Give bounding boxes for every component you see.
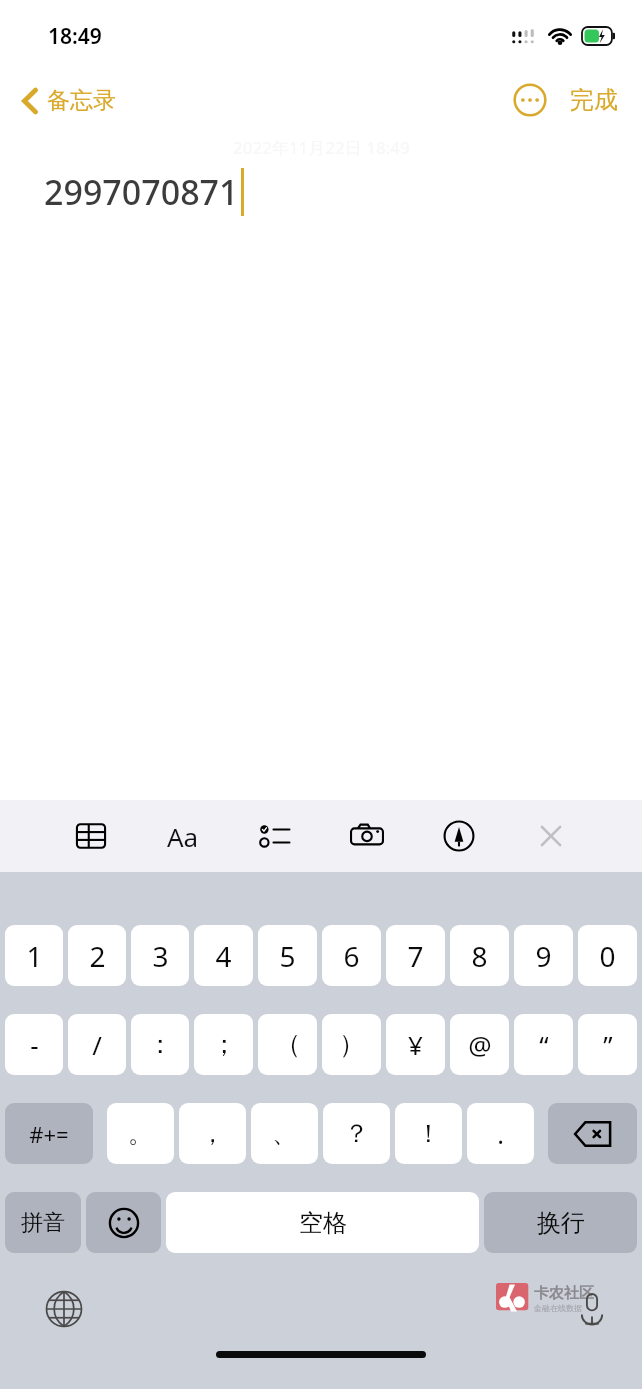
staticText: ¥ xyxy=(408,1027,423,1062)
staticText: - xyxy=(30,1027,39,1062)
button[interactable]: #+= xyxy=(5,1103,93,1164)
staticText: 。 xyxy=(128,1118,153,1149)
staticText: 拼音 xyxy=(21,1209,65,1237)
staticText: 7 xyxy=(407,937,424,975)
button[interactable]: 0 xyxy=(578,925,637,986)
button[interactable]: ” xyxy=(578,1014,637,1075)
staticText: . xyxy=(497,1117,504,1151)
staticText: 4 xyxy=(215,937,232,975)
staticText: 8 xyxy=(471,937,488,975)
button[interactable]: ？ xyxy=(323,1103,390,1164)
staticText: Aa xyxy=(167,819,199,854)
staticText: 金融在线数据 xyxy=(534,1303,582,1313)
staticText: ， xyxy=(200,1118,225,1149)
staticText: 卡农社区 xyxy=(534,1284,594,1303)
staticText: @ xyxy=(468,1027,492,1062)
button[interactable]: 2 xyxy=(68,925,126,986)
button[interactable]: 1 xyxy=(5,925,63,986)
button[interactable]: 4 xyxy=(194,925,253,986)
staticText: 6 xyxy=(343,937,360,975)
button[interactable]: 。 xyxy=(107,1103,174,1164)
button[interactable]: 6 xyxy=(322,925,381,986)
staticText: ” xyxy=(603,1027,613,1062)
staticText: ？ xyxy=(344,1118,369,1149)
button[interactable]: ） xyxy=(322,1014,381,1075)
button[interactable]: Markup xyxy=(440,817,478,855)
staticText: 2997070871 xyxy=(44,169,239,215)
button[interactable]: ， xyxy=(179,1103,246,1164)
button[interactable]: 完成 xyxy=(566,79,622,121)
staticText: 3 xyxy=(152,937,169,975)
staticText: 2 xyxy=(89,937,106,975)
button[interactable]: 拼音 xyxy=(5,1192,81,1253)
button[interactable]: 3 xyxy=(131,925,189,986)
button[interactable]: Delete xyxy=(548,1103,637,1164)
button[interactable]: 8 xyxy=(450,925,509,986)
button[interactable]: ！ xyxy=(395,1103,462,1164)
button[interactable]: 9 xyxy=(514,925,573,986)
staticText: 1 xyxy=(26,937,43,975)
button[interactable]: ； xyxy=(194,1014,253,1075)
button[interactable]: More options xyxy=(508,78,552,122)
staticText: ） xyxy=(339,1028,365,1061)
staticText: 、 xyxy=(272,1118,297,1149)
staticText: ： xyxy=(147,1028,173,1061)
staticText: ！ xyxy=(416,1118,441,1149)
button[interactable]: Text format xyxy=(164,817,202,855)
button[interactable]: Camera xyxy=(348,817,386,855)
button[interactable]: Dictation xyxy=(568,1285,616,1333)
staticText: （ xyxy=(275,1028,301,1061)
button[interactable]: Emoji xyxy=(86,1192,161,1253)
staticText: #+= xyxy=(29,1119,69,1149)
staticText: “ xyxy=(539,1027,549,1062)
staticText: 备忘录 xyxy=(47,86,116,115)
button[interactable]: 空格 xyxy=(166,1192,479,1253)
button[interactable]: / xyxy=(68,1014,126,1075)
staticText: 18:49 xyxy=(48,22,102,51)
button[interactable]: ¥ xyxy=(386,1014,445,1075)
button[interactable]: （ xyxy=(258,1014,317,1075)
button[interactable]: 7 xyxy=(386,925,445,986)
button[interactable]: ： xyxy=(131,1014,189,1075)
staticText: ； xyxy=(211,1028,237,1061)
staticText: 9 xyxy=(535,937,552,975)
button[interactable]: 、 xyxy=(251,1103,318,1164)
button[interactable]: 换行 xyxy=(484,1192,637,1253)
button[interactable]: 5 xyxy=(258,925,317,986)
staticText: 5 xyxy=(279,937,296,975)
button[interactable]: Change keyboard xyxy=(38,1283,90,1335)
button[interactable]: @ xyxy=(450,1014,509,1075)
staticText: / xyxy=(92,1027,102,1062)
button[interactable]: Table xyxy=(72,817,110,855)
button[interactable]: Close keyboard xyxy=(532,817,570,855)
button[interactable]: - xyxy=(5,1014,63,1075)
staticText: 换行 xyxy=(537,1208,585,1238)
staticText: 0 xyxy=(599,937,616,975)
staticText: 空格 xyxy=(299,1208,347,1238)
button[interactable]: 备忘录 xyxy=(14,80,124,121)
button[interactable]: . xyxy=(467,1103,534,1164)
button[interactable]: “ xyxy=(514,1014,573,1075)
staticText: 完成 xyxy=(570,85,618,115)
button[interactable]: Checklist xyxy=(256,817,294,855)
